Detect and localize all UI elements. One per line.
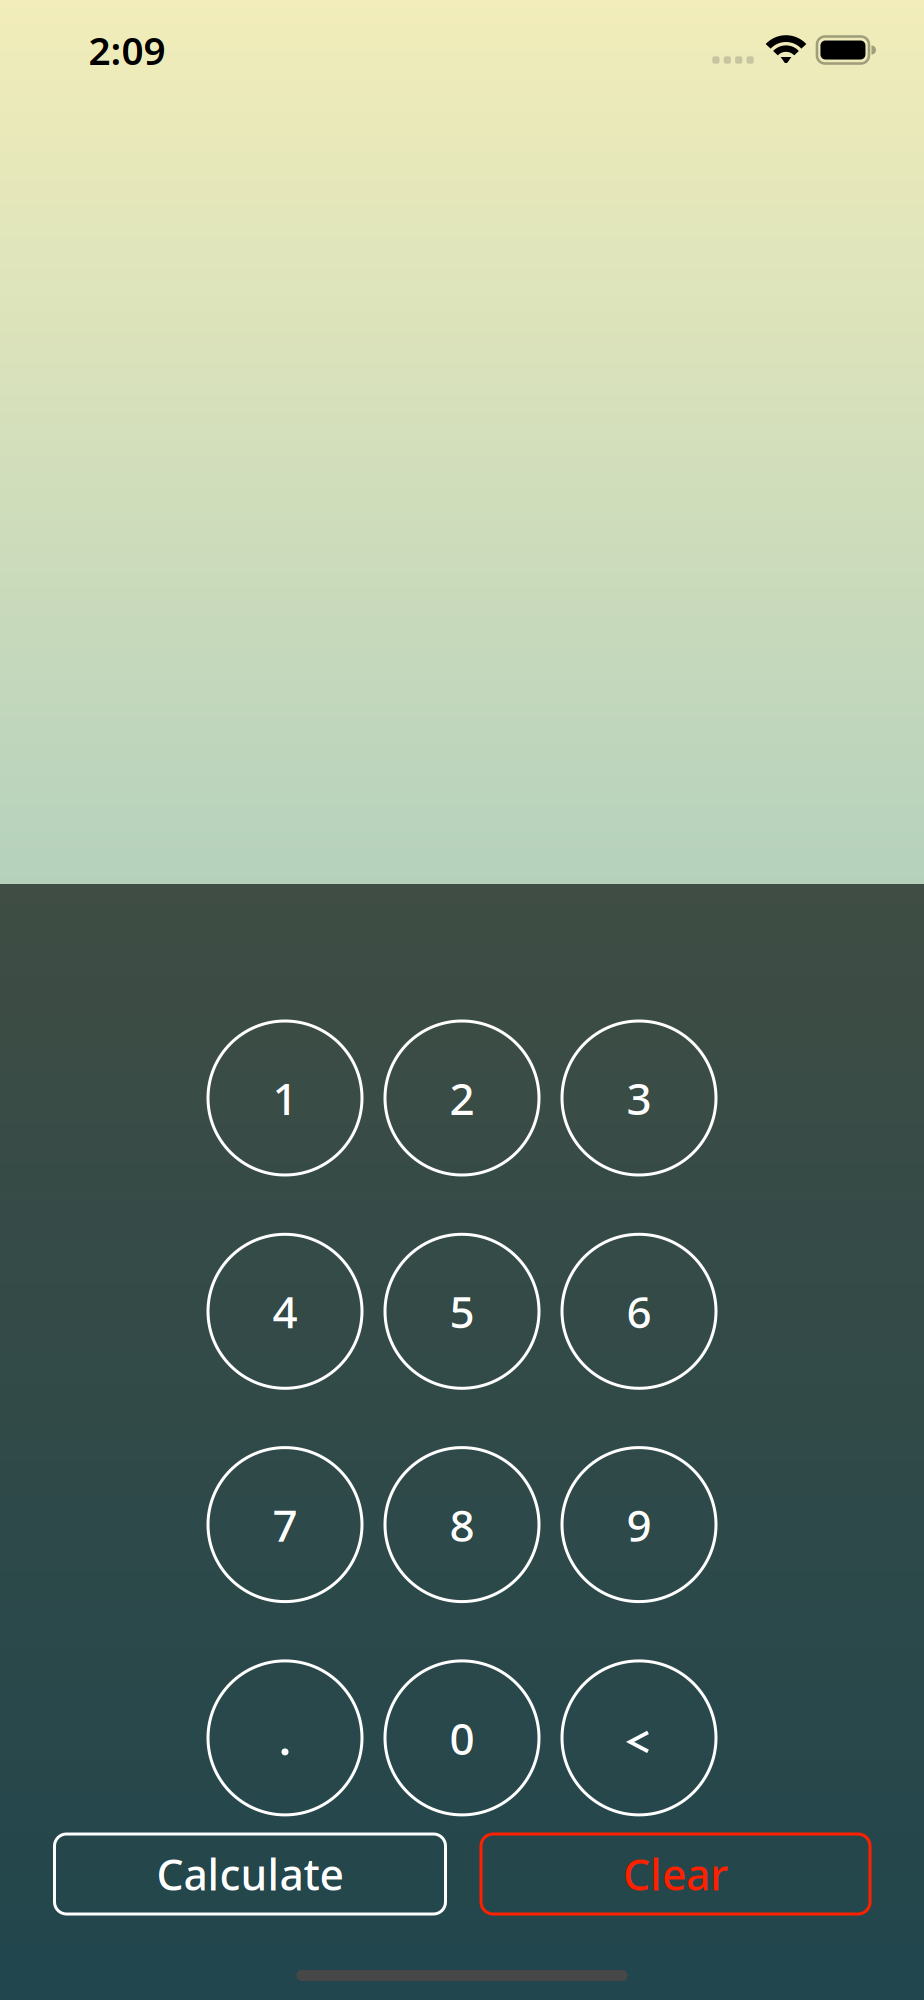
staticText: 1	[272, 1069, 297, 1127]
button[interactable]: 4	[208, 1234, 362, 1388]
button[interactable]: 0	[385, 1661, 539, 1815]
staticText: 6	[626, 1282, 651, 1340]
staticText: Calculate	[156, 1846, 343, 1902]
button[interactable]: 8	[385, 1448, 539, 1602]
staticText: 5	[449, 1282, 474, 1340]
button[interactable]: 3	[562, 1021, 716, 1175]
staticText: 0	[449, 1709, 474, 1767]
staticText: 3	[626, 1069, 651, 1127]
staticText: 7	[272, 1495, 297, 1554]
staticText: 2:09	[88, 24, 165, 76]
staticText: 9	[626, 1495, 651, 1554]
button[interactable]: 5	[385, 1234, 539, 1388]
staticText: 8	[449, 1495, 474, 1554]
button[interactable]: 6	[562, 1234, 716, 1388]
button[interactable]: Calculate	[54, 1834, 445, 1914]
button[interactable]: Clear	[481, 1834, 870, 1914]
staticText: 2	[449, 1069, 474, 1127]
button[interactable]: 1	[208, 1021, 362, 1175]
staticText: Clear	[623, 1846, 728, 1902]
staticText: 4	[272, 1282, 297, 1340]
button[interactable]: 7	[208, 1448, 362, 1602]
button[interactable]: 2	[385, 1021, 539, 1175]
button[interactable]: 9	[562, 1448, 716, 1602]
button[interactable]: Decimal point	[208, 1661, 362, 1815]
button[interactable]: Delete	[562, 1661, 716, 1815]
